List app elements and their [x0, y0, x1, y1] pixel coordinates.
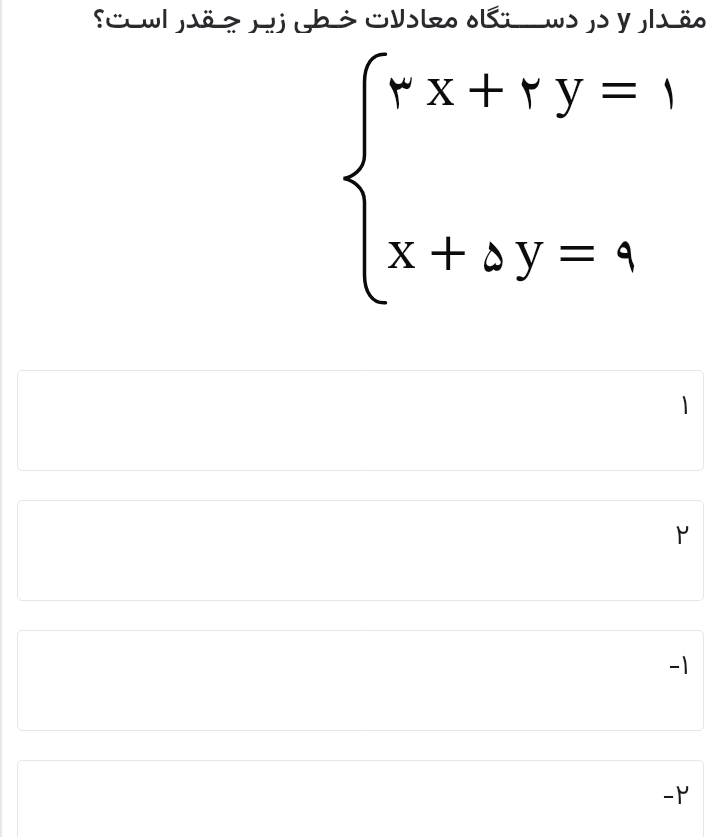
staticText: x	[427, 62, 454, 118]
staticText: ۵	[479, 212, 509, 300]
staticText: ۲	[675, 515, 690, 559]
button[interactable]: Answer option -۱	[17, 630, 704, 731]
staticText: -۲	[662, 775, 690, 819]
staticText: ۱	[681, 385, 690, 429]
staticText: y	[516, 225, 544, 281]
staticText: y	[556, 62, 584, 118]
staticText: +	[466, 62, 507, 118]
staticText: =	[557, 225, 598, 281]
button[interactable]: Answer option -۲	[17, 760, 704, 837]
button[interactable]: Answer option ۲	[17, 500, 704, 601]
staticText: ۲	[516, 49, 546, 137]
button[interactable]: Answer option ۱	[17, 370, 704, 471]
staticText: +	[428, 225, 469, 281]
staticText: مقـدار y در دســــتگاه معادلات خـطی زیـر…	[0, 0, 707, 33]
staticText: ۳	[386, 49, 416, 137]
staticText: ۹	[611, 212, 641, 300]
staticText: -۱	[668, 645, 690, 689]
staticText: =	[599, 62, 640, 118]
staticText: ۱	[654, 49, 684, 137]
staticText: x	[388, 225, 415, 281]
